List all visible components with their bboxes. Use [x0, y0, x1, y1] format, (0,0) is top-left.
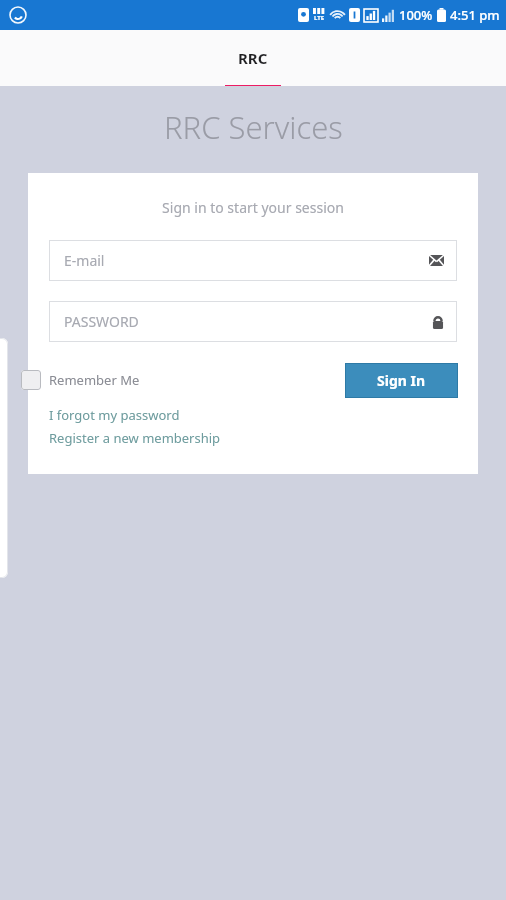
- button[interactable]: Remember Me: [21, 370, 140, 390]
- staticText: I forgot my password: [49, 406, 180, 424]
- button[interactable]: Register a new membership: [49, 429, 221, 447]
- staticText: LTE: [314, 14, 325, 22]
- button[interactable]: Sign In: [345, 363, 458, 398]
- button[interactable]: E-mail: [49, 240, 457, 281]
- staticText: Sign in to start your session: [162, 198, 344, 217]
- staticText: RRC Services: [164, 106, 343, 148]
- staticText: 4:51 pm: [450, 6, 500, 24]
- staticText: PASSWORD: [64, 312, 139, 331]
- other: E-mail: [429, 255, 444, 266]
- staticText: Remember Me: [49, 371, 140, 389]
- button[interactable]: I forgot my password: [49, 406, 180, 424]
- staticText: 100%: [399, 6, 433, 24]
- button[interactable]: PASSWORD: [49, 301, 457, 342]
- other: Password: [432, 315, 444, 329]
- button[interactable]: RRC: [225, 30, 281, 86]
- staticText: Sign In: [377, 371, 426, 390]
- staticText: RRC: [238, 48, 268, 68]
- staticText: E-mail: [64, 251, 105, 270]
- staticText: Register a new membership: [49, 429, 221, 447]
